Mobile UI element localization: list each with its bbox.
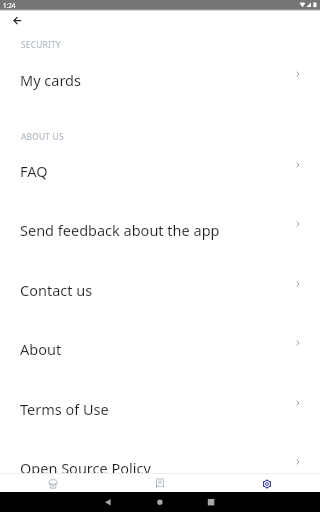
button[interactable]: Orders [106, 474, 213, 492]
staticText: 1:24 [3, 1, 16, 9]
button[interactable]: Contact us [0, 257, 320, 316]
button[interactable]: Terms of Use [0, 376, 320, 435]
button[interactable]: Settings [213, 474, 320, 492]
staticText: About [20, 339, 62, 359]
staticText: SECURITY [21, 39, 61, 50]
staticText: FAQ [20, 161, 48, 181]
button[interactable]: About [0, 316, 320, 375]
staticText: Contact us [20, 280, 93, 300]
button[interactable]: Shop [0, 474, 106, 492]
staticText: Terms of Use [20, 399, 109, 419]
staticText: My cards [20, 70, 81, 90]
button[interactable]: Back [6, 9, 29, 32]
staticText: Send feedback about the app [20, 220, 220, 240]
button[interactable]: FAQ [0, 138, 320, 197]
staticText: ABOUT US [21, 131, 64, 142]
staticText: Open Source Policy [20, 458, 151, 473]
button[interactable]: My cards [0, 47, 320, 106]
button[interactable]: Open Source Policy [0, 435, 320, 473]
button[interactable]: Send feedback about the app [0, 197, 320, 256]
